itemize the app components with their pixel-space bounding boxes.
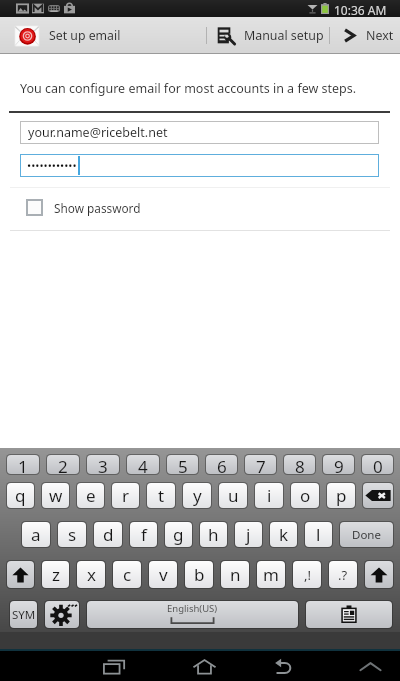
staticText: Next (366, 27, 394, 44)
button[interactable]: Home (187, 651, 221, 681)
button[interactable]: p (327, 483, 355, 508)
staticText: 6 (217, 455, 227, 474)
staticText: 5 (178, 455, 188, 474)
button[interactable]: Hide keyboard (353, 651, 387, 681)
staticText: l (316, 523, 321, 546)
staticText: i (267, 484, 272, 507)
button[interactable]: u (219, 483, 247, 508)
button[interactable]: a (22, 522, 50, 547)
staticText: Manual setup (244, 27, 324, 44)
staticText: your.name@ricebelt.net (28, 124, 168, 141)
button[interactable]: g (165, 522, 192, 547)
staticText: j (246, 523, 251, 546)
button[interactable]: .? (329, 561, 357, 588)
button[interactable]: q (7, 483, 34, 508)
button[interactable]: Done (340, 522, 393, 547)
button[interactable]: h (200, 522, 227, 547)
staticText: f (141, 523, 147, 546)
staticText: q (15, 484, 26, 507)
button[interactable]: Show password (18, 194, 153, 221)
button[interactable]: 8 (284, 455, 315, 474)
staticText: w (49, 484, 63, 507)
button[interactable]: 1 (7, 455, 39, 474)
button[interactable]: e (77, 483, 104, 508)
button[interactable] (363, 483, 393, 508)
staticText: Done (352, 527, 381, 543)
button[interactable]: Recents (97, 651, 131, 681)
button[interactable]: •••••••••••• (20, 154, 379, 177)
staticText: 4 (138, 455, 148, 474)
button[interactable]: x (77, 561, 105, 588)
button[interactable]: s (58, 522, 86, 547)
button[interactable]: Next (336, 17, 400, 54)
button[interactable]: Manual setup (211, 17, 330, 54)
button[interactable]: Set up email (6, 17, 131, 54)
staticText: m (263, 563, 279, 586)
staticText: n (230, 563, 241, 586)
staticText: 7 (256, 455, 266, 474)
button[interactable]: t (147, 483, 175, 508)
staticText: b (194, 563, 205, 586)
button[interactable]: c (113, 561, 141, 588)
button[interactable]: m (257, 561, 285, 588)
button[interactable]: Back (265, 651, 299, 681)
button[interactable]: k (270, 522, 297, 547)
staticText: r (122, 484, 130, 507)
button[interactable]: ,! (293, 561, 321, 588)
staticText: z (52, 563, 60, 586)
staticText: English(US) (167, 602, 218, 615)
button[interactable]: r (112, 483, 139, 508)
button[interactable]: v (149, 561, 177, 588)
staticText: h (208, 523, 219, 546)
button[interactable] (306, 601, 392, 628)
staticText: •••••••••••• (27, 158, 77, 173)
button[interactable]: w (42, 483, 69, 508)
button[interactable]: j (235, 522, 262, 547)
button[interactable] (7, 561, 34, 588)
button[interactable]: b (185, 561, 213, 588)
staticText: u (228, 484, 239, 507)
staticText: 10:36 AM (334, 2, 387, 18)
button[interactable]: n (221, 561, 249, 588)
button[interactable]: i (255, 483, 283, 508)
button[interactable]: 4 (127, 455, 159, 474)
staticText: 2 (58, 455, 68, 474)
button[interactable]: 7 (245, 455, 276, 474)
staticText: t (158, 484, 165, 507)
staticText: v (159, 563, 168, 586)
staticText: k (279, 523, 289, 546)
button[interactable]: 6 (206, 455, 237, 474)
button[interactable]: your.name@ricebelt.net (20, 121, 379, 144)
staticText: 3 (98, 455, 108, 474)
staticText: x (87, 563, 96, 586)
button[interactable]: 5 (167, 455, 198, 474)
staticText: 1 (18, 455, 28, 474)
button[interactable] (365, 561, 393, 588)
button[interactable]: 3 (87, 455, 119, 474)
button[interactable]: y (183, 483, 211, 508)
button[interactable] (45, 601, 79, 628)
staticText: 8 (295, 455, 305, 474)
staticText: y (193, 484, 202, 507)
button[interactable]: o (291, 483, 319, 508)
button[interactable]: f (130, 522, 157, 547)
staticText: 0 (373, 455, 383, 474)
staticText: e (86, 484, 96, 507)
staticText: s (68, 523, 77, 546)
staticText: SYM (12, 607, 36, 623)
button[interactable]: l (305, 522, 332, 547)
button[interactable]: d (94, 522, 122, 547)
button[interactable]: SYM (10, 601, 37, 628)
button[interactable]: 2 (47, 455, 79, 474)
staticText: a (31, 523, 41, 546)
button[interactable]: English(US) (87, 601, 298, 628)
button[interactable]: z (42, 561, 69, 588)
button[interactable]: 0 (362, 455, 393, 474)
staticText: 9 (334, 455, 344, 474)
staticText: g (173, 523, 184, 546)
staticText: Show password (54, 200, 141, 216)
button[interactable]: 9 (323, 455, 354, 474)
staticText: d (103, 523, 114, 546)
staticText: .? (338, 566, 348, 584)
staticText: You can configure email for most account… (20, 80, 357, 97)
